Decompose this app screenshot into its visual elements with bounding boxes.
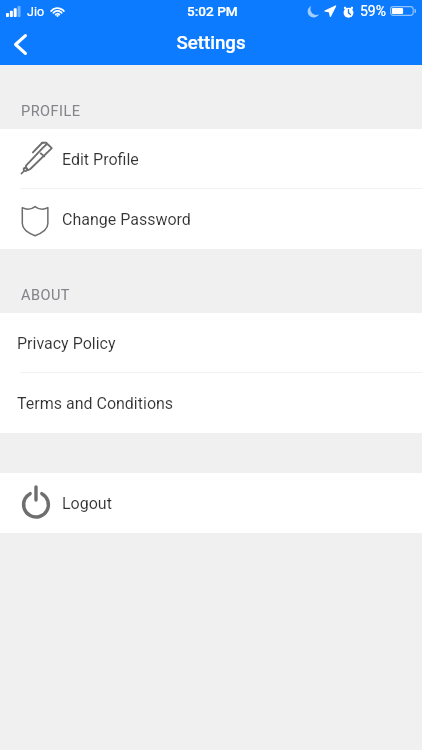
button[interactable]: Edit Profile	[0, 129, 422, 189]
staticText: ABOUT	[21, 287, 71, 304]
button[interactable]: Terms and Conditions	[0, 373, 422, 433]
staticText: 59%	[360, 3, 386, 19]
staticText: Edit Profile	[62, 150, 139, 169]
staticText: Settings	[176, 32, 246, 54]
staticText: Change Password	[62, 210, 191, 229]
button[interactable]: Back	[0, 24, 40, 64]
button[interactable]: Logout	[0, 473, 422, 533]
staticText: 5:02 PM	[187, 3, 238, 19]
staticText: Jio	[27, 4, 45, 19]
staticText: Logout	[62, 494, 112, 513]
staticText: Privacy Policy	[17, 334, 116, 353]
staticText: Terms and Conditions	[17, 394, 174, 413]
button[interactable]: Change Password	[0, 189, 422, 249]
staticText: PROFILE	[21, 103, 81, 120]
button[interactable]: Privacy Policy	[0, 313, 422, 373]
